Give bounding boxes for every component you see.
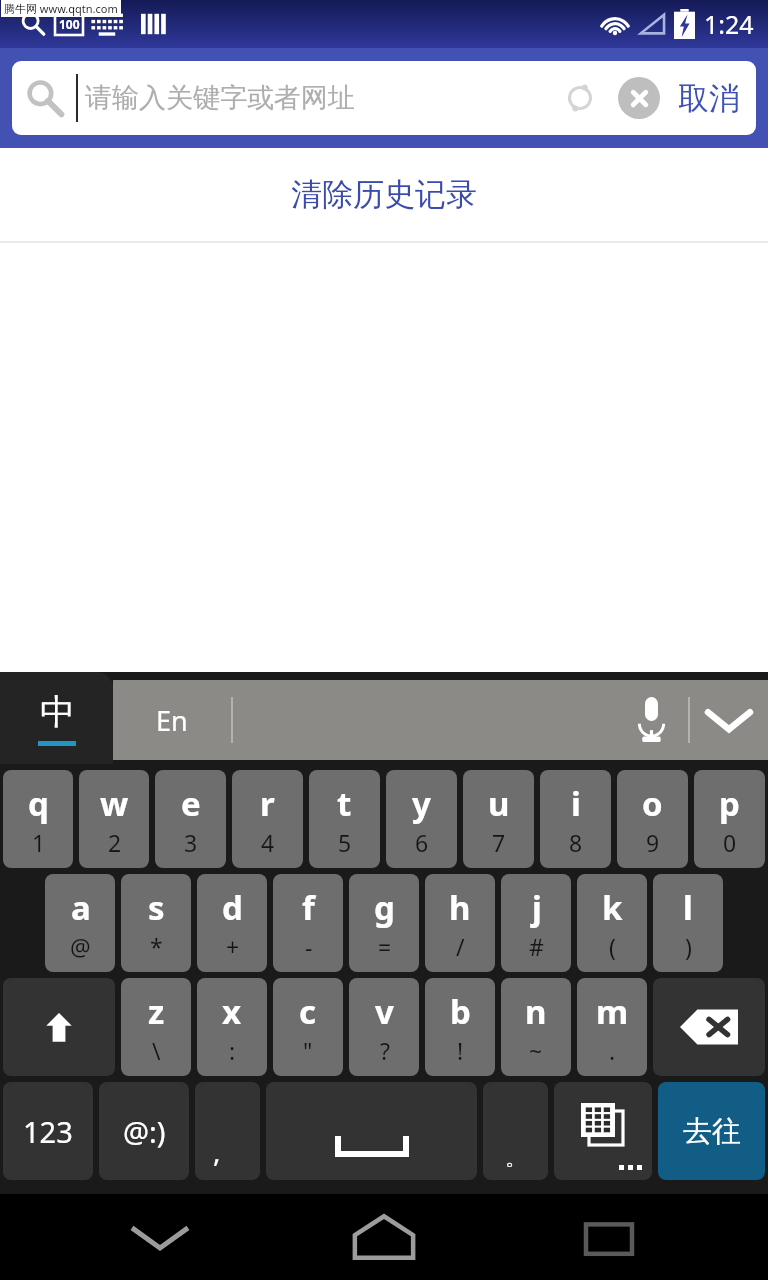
button[interactable]: 清除历史记录 <box>0 148 768 241</box>
button[interactable]: c <box>273 978 343 1076</box>
button[interactable]: , <box>195 1082 260 1180</box>
button[interactable]: 取消 <box>668 61 756 135</box>
staticText: 123 <box>23 1112 73 1151</box>
staticText: p <box>719 781 740 826</box>
staticText: 2 <box>108 827 122 858</box>
button[interactable]: Recents <box>544 1194 674 1280</box>
staticText: @:) <box>123 1112 166 1151</box>
staticText: 8 <box>569 827 583 858</box>
button[interactable]: f <box>273 874 343 972</box>
button[interactable]: b <box>425 978 495 1076</box>
button[interactable]: r <box>232 770 303 868</box>
staticText: = <box>378 931 392 962</box>
button[interactable]: p <box>694 770 765 868</box>
button[interactable]: a <box>45 874 115 972</box>
button[interactable]: 简繁转换 <box>552 70 608 126</box>
button[interactable]: Voice input <box>614 683 688 757</box>
button[interactable]: Home <box>319 1194 449 1280</box>
button[interactable]: Backspace <box>653 978 765 1076</box>
staticText: 去往 <box>683 1113 741 1150</box>
staticText: ? <box>380 1035 390 1066</box>
staticText: En <box>156 702 188 739</box>
staticText: 0 <box>723 827 737 858</box>
staticText: h <box>449 885 471 930</box>
button[interactable]: 中 <box>0 672 113 764</box>
button[interactable]: 去往 <box>658 1082 765 1180</box>
staticText: 7 <box>492 827 506 858</box>
staticText: l <box>683 885 693 930</box>
staticText: w <box>100 781 129 826</box>
staticText: ~ <box>529 1035 543 1066</box>
staticText: 中 <box>40 690 75 734</box>
button[interactable]: j <box>501 874 571 972</box>
button[interactable]: En <box>113 680 231 760</box>
button[interactable]: o <box>617 770 688 868</box>
staticText: 清除历史记录 <box>291 175 477 214</box>
staticText: ! <box>457 1035 464 1066</box>
button[interactable]: i <box>540 770 611 868</box>
staticText: 1 <box>32 827 46 858</box>
staticText: c <box>299 989 317 1034</box>
staticText: i <box>571 781 581 826</box>
staticText: 4 <box>261 827 275 858</box>
staticText: y <box>412 781 431 826</box>
button[interactable]: n <box>501 978 571 1076</box>
button[interactable]: l <box>653 874 723 972</box>
button[interactable]: t <box>309 770 380 868</box>
button[interactable]: Space <box>266 1082 477 1180</box>
staticText: a <box>71 885 91 930</box>
button[interactable]: d <box>197 874 267 972</box>
staticText: f <box>302 885 315 930</box>
button[interactable]: Hide keyboard <box>690 681 768 759</box>
button[interactable]: 123 <box>3 1082 93 1180</box>
button[interactable]: 。 <box>483 1082 548 1180</box>
button[interactable]: h <box>425 874 495 972</box>
staticText: n <box>525 989 547 1034</box>
button[interactable]: e <box>155 770 226 868</box>
button[interactable]: x <box>197 978 267 1076</box>
staticText: k <box>602 885 623 930</box>
staticText: 9 <box>646 827 660 858</box>
button[interactable]: s <box>121 874 191 972</box>
button[interactable]: k <box>577 874 647 972</box>
button[interactable]: w <box>79 770 149 868</box>
button[interactable]: g <box>349 874 419 972</box>
staticText: q <box>28 781 49 826</box>
staticText: 3 <box>184 827 198 858</box>
staticText: j <box>532 885 542 930</box>
staticText: / <box>456 931 465 962</box>
button[interactable]: @:) <box>99 1082 189 1180</box>
staticText: + <box>226 931 240 962</box>
staticText: t <box>337 781 352 826</box>
staticText: ( <box>609 931 616 962</box>
staticText: , <box>213 1132 221 1170</box>
staticText: 请输入关键字或者网址 <box>85 81 552 115</box>
button[interactable]: m <box>577 978 647 1076</box>
staticText: m <box>596 989 629 1034</box>
staticText: ) <box>685 931 692 962</box>
button[interactable]: z <box>121 978 191 1076</box>
staticText: @ <box>70 931 91 962</box>
staticText: 。 <box>505 1144 527 1172</box>
staticText: 100 <box>59 16 80 32</box>
button[interactable]: v <box>349 978 419 1076</box>
staticText: r <box>260 781 275 826</box>
button[interactable]: Back <box>95 1194 225 1280</box>
button[interactable]: u <box>463 770 534 868</box>
button[interactable]: y <box>386 770 457 868</box>
staticText: d <box>222 885 243 930</box>
staticText: - <box>305 931 313 962</box>
button[interactable]: Search <box>12 66 76 130</box>
staticText: 取消 <box>678 79 740 118</box>
staticText: 6 <box>415 827 429 858</box>
button[interactable]: Shift <box>3 978 115 1076</box>
button[interactable]: q <box>3 770 73 868</box>
staticText: \ <box>152 1035 161 1066</box>
button[interactable]: Symbols <box>554 1082 652 1180</box>
staticText: # <box>529 931 544 962</box>
staticText: . <box>609 1035 616 1066</box>
staticText: " <box>303 1035 313 1066</box>
staticText: g <box>374 885 395 930</box>
staticText: u <box>488 781 510 826</box>
button[interactable]: Clear <box>610 69 668 127</box>
